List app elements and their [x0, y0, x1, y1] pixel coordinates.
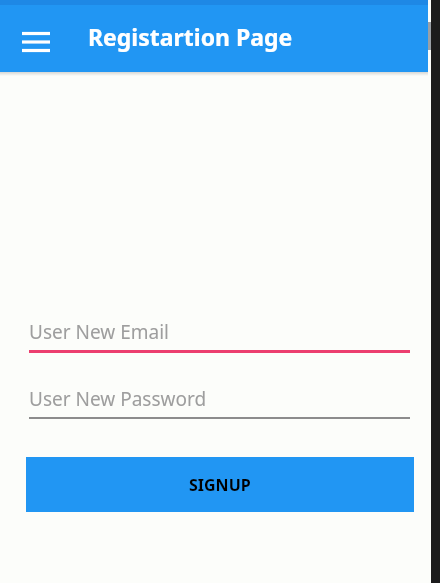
staticText: SIGNUP	[189, 474, 251, 496]
button[interactable]: User New Email	[29, 314, 410, 353]
button[interactable]: Open navigation menu	[12, 18, 60, 66]
staticText: Registartion Page	[88, 21, 293, 52]
button[interactable]: User New Password	[29, 381, 410, 419]
staticText: User New Email	[29, 319, 169, 345]
button[interactable]: SIGNUP	[26, 457, 414, 512]
staticText: User New Password	[29, 386, 207, 412]
